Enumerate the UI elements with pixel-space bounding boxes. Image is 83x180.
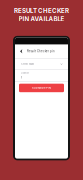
staticText: PIN AVAILABLE bbox=[18, 15, 64, 23]
staticText: Result Checker pin bbox=[27, 49, 55, 53]
staticText: 1 bbox=[21, 76, 22, 79]
staticText: RESULT CHECKER bbox=[14, 7, 69, 14]
button[interactable]: Back bbox=[15, 46, 27, 57]
staticText: Select Exam bbox=[21, 63, 34, 65]
button[interactable]: Select Exam bbox=[15, 59, 68, 69]
staticText: Quantity bbox=[21, 72, 29, 74]
staticText: Subscribe PIN bbox=[32, 86, 51, 89]
button[interactable]: Subscribe PIN bbox=[19, 84, 64, 92]
